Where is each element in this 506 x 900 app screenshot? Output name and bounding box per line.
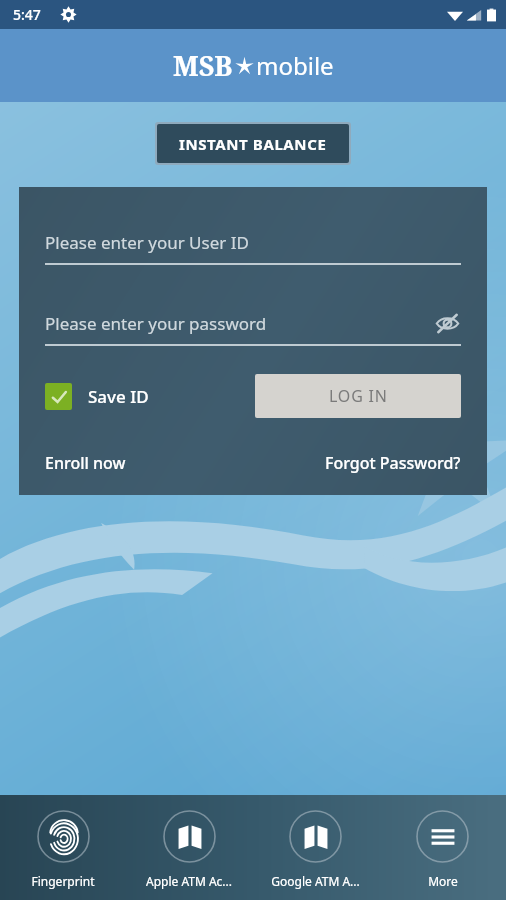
button[interactable]: Show password xyxy=(433,309,461,337)
staticText: Forgot Password? xyxy=(325,452,461,474)
button[interactable]: Save ID xyxy=(45,383,149,410)
staticText: More xyxy=(428,873,458,889)
button[interactable]: LOG IN xyxy=(255,374,461,418)
other: Fingerprint login xyxy=(49,822,79,852)
staticText: LOG IN xyxy=(329,385,388,407)
button[interactable]: Forgot Password? xyxy=(325,452,461,474)
button[interactable]: ATM locations map xyxy=(126,795,252,900)
staticText: MSB xyxy=(173,47,233,84)
staticText: INSTANT BALANCE xyxy=(179,134,327,154)
button[interactable]: ATM locations map xyxy=(252,795,379,900)
staticText: mobile xyxy=(256,49,334,82)
staticText: Save ID xyxy=(88,385,149,408)
button[interactable]: INSTANT BALANCE xyxy=(157,124,349,163)
button[interactable]: Enroll now xyxy=(45,452,126,474)
other: ATM locations map xyxy=(303,824,329,850)
button[interactable]: Please enter your password xyxy=(45,309,461,346)
staticText: Google ATM A... xyxy=(271,873,360,889)
button[interactable]: Please enter your User ID xyxy=(45,231,461,265)
button[interactable]: More options xyxy=(379,795,506,900)
other: More options xyxy=(430,824,456,850)
staticText: Please enter your User ID xyxy=(45,231,249,254)
other: ATM locations map xyxy=(177,824,203,850)
staticText: Apple ATM Ac... xyxy=(146,873,232,889)
button[interactable]: Fingerprint login xyxy=(0,795,126,900)
staticText: Enroll now xyxy=(45,452,126,474)
staticText: Please enter your password xyxy=(45,312,433,335)
staticText: Fingerprint xyxy=(31,873,95,889)
staticText: 5:47 xyxy=(13,5,41,24)
